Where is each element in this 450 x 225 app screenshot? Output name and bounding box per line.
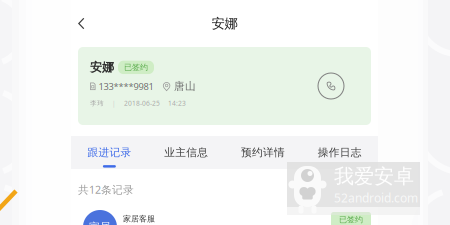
button[interactable]: 家居 xyxy=(71,210,378,225)
staticText: 我爱安卓 xyxy=(334,164,414,189)
staticText: 唐山 xyxy=(174,80,196,93)
staticText: 133****9981 xyxy=(99,80,154,92)
staticText: 安娜 xyxy=(211,15,237,32)
button[interactable]: 跟进记录 xyxy=(71,136,148,169)
button[interactable]: Call 安娜 xyxy=(318,47,371,99)
staticText: 业主信息 xyxy=(164,146,208,159)
staticText: 共12条记录 xyxy=(78,182,134,197)
staticText: 安娜 xyxy=(90,60,114,75)
staticText: 李玮 xyxy=(90,99,104,107)
staticText: 操作日志 xyxy=(318,146,362,159)
button[interactable]: 业主信息 xyxy=(148,136,225,169)
staticText: 已签约 xyxy=(124,62,148,72)
staticText: 2018-06-25 14:23 xyxy=(124,99,186,108)
button[interactable]: 预约详情 xyxy=(224,136,301,169)
staticText: 跟进记录 xyxy=(87,146,131,159)
staticText: 家居 xyxy=(89,220,111,225)
button[interactable]: Back xyxy=(71,6,99,41)
button[interactable]: 操作日志 xyxy=(301,136,378,169)
staticText: 预约详情 xyxy=(241,146,285,159)
staticText: 已签约 xyxy=(339,215,363,224)
staticText: 家居客服 xyxy=(123,214,155,224)
staticText: 52android.com xyxy=(334,190,418,206)
